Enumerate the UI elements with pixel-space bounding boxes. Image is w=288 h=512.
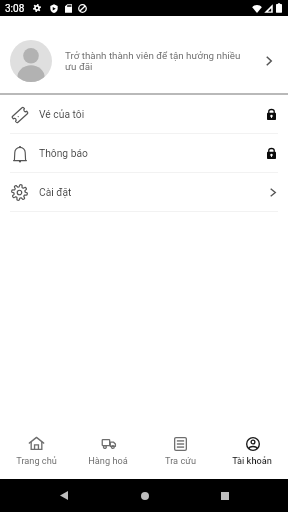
button[interactable]: Trang chủ <box>0 429 72 479</box>
staticText: Vé của tôi <box>39 108 267 120</box>
staticText: 3:08 <box>5 3 25 15</box>
button[interactable]: Hàng hoá <box>72 429 144 479</box>
button[interactable]: Home <box>128 479 161 512</box>
button[interactable]: Recents <box>208 479 241 512</box>
button[interactable]: Trở thành thành viên để tận hưởng nhiều … <box>0 40 288 82</box>
staticText: Trở thành thành viên để tận hưởng nhiều … <box>65 50 246 72</box>
staticText: Cài đặt <box>39 186 270 198</box>
button[interactable]: Cài đặt <box>0 173 288 211</box>
button[interactable]: Back <box>47 479 80 512</box>
button[interactable]: Vé của tôi <box>0 95 288 133</box>
staticText: Tra cứu <box>165 455 196 466</box>
staticText: Thông báo <box>39 147 267 159</box>
button[interactable]: Tài khoản <box>216 429 288 479</box>
button[interactable]: Tra cứu <box>144 429 216 479</box>
staticText: Trang chủ <box>16 455 57 466</box>
staticText: Hàng hoá <box>88 455 128 466</box>
staticText: Tài khoản <box>232 455 272 466</box>
button[interactable]: Thông báo <box>0 134 288 172</box>
